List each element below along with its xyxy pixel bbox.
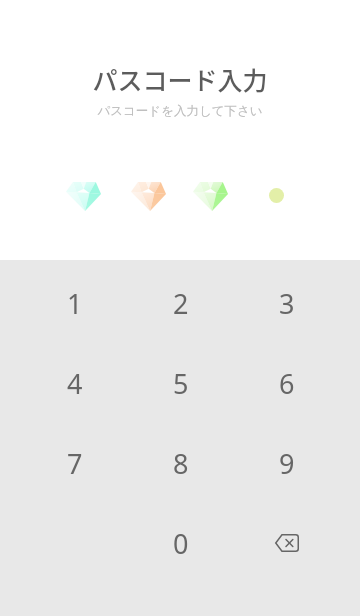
button[interactable]: Backspace: [234, 503, 340, 583]
staticText: 7: [67, 445, 83, 482]
staticText: パスコードを入力して下さい: [97, 103, 263, 119]
button[interactable]: 9: [234, 423, 340, 503]
button[interactable]: 6: [234, 343, 340, 423]
staticText: 2: [173, 285, 189, 322]
button[interactable]: 4: [22, 343, 128, 423]
button[interactable]: 3: [234, 263, 340, 343]
staticText: パスコード入力: [92, 61, 268, 97]
staticText: 6: [279, 365, 295, 402]
button[interactable]: 2: [128, 263, 234, 343]
staticText: 4: [67, 365, 83, 402]
staticText: 5: [173, 365, 189, 402]
staticText: 1: [67, 285, 83, 322]
staticText: 0: [173, 525, 189, 562]
button[interactable]: 8: [128, 423, 234, 503]
button[interactable]: 1: [22, 263, 128, 343]
button[interactable]: 0: [128, 503, 234, 583]
button[interactable]: 5: [128, 343, 234, 423]
button[interactable]: 7: [22, 423, 128, 503]
staticText: 3: [279, 285, 295, 322]
staticText: 8: [173, 445, 189, 482]
other: Backspace: [275, 534, 299, 552]
staticText: 9: [279, 445, 295, 482]
